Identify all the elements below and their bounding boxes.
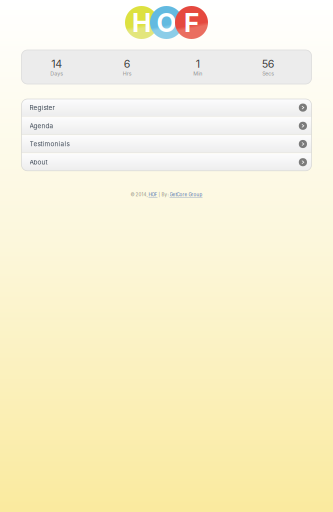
staticText: Register [29,104,54,111]
staticText: HOF [148,192,157,197]
staticText: Secs [262,70,274,77]
button[interactable]: About [21,154,311,171]
staticText: H [132,7,151,38]
staticText: Days [50,70,63,77]
staticText: 1 [196,57,200,70]
staticText: O [156,7,176,38]
staticText: 6 [124,57,131,70]
staticText: About [29,158,47,166]
staticText: © 2014, [130,192,148,197]
button[interactable]: Testimonials [21,135,311,153]
staticText: Agenda [29,122,53,130]
staticText: Min [193,70,202,77]
staticText: GetCore Group [169,192,202,197]
staticText: 56 [262,57,275,70]
button[interactable]: GetCore Group [169,192,202,197]
staticText: 14 [51,57,62,70]
button[interactable]: Register [21,99,311,116]
staticText: F [184,7,199,38]
button[interactable]: HOF [148,192,157,197]
staticText: Hrs [123,70,132,77]
staticText: | By: [157,192,169,197]
staticText: Testimonials [29,140,69,148]
button[interactable]: Agenda [21,117,311,134]
